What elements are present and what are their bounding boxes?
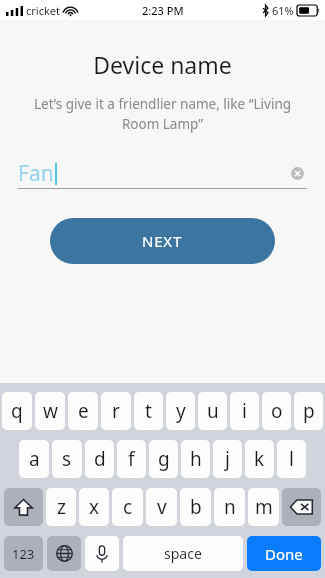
button[interactable]: u	[198, 392, 227, 430]
button[interactable]: x	[79, 488, 109, 526]
staticText: z	[57, 494, 66, 520]
button[interactable]: Backspace	[282, 488, 321, 526]
staticText: j	[225, 446, 230, 472]
button[interactable]: g	[149, 440, 178, 478]
button[interactable]: n	[214, 488, 245, 526]
button[interactable]: Dictate	[85, 536, 119, 571]
staticText: u	[207, 398, 219, 424]
staticText: a	[29, 446, 40, 472]
button[interactable]: q	[2, 392, 32, 430]
staticText: v	[157, 494, 167, 520]
staticText: c	[123, 494, 133, 520]
button[interactable]: d	[85, 440, 114, 478]
button[interactable]: Switch keyboard	[47, 536, 81, 571]
staticText: 123	[12, 545, 35, 563]
staticText: cricket	[26, 3, 60, 18]
button[interactable]: j	[213, 440, 242, 478]
button[interactable]: r	[101, 392, 131, 430]
button[interactable]: w	[35, 392, 65, 430]
staticText: Device name	[0, 49, 325, 80]
staticText: 61%	[272, 3, 294, 18]
button[interactable]: y	[166, 392, 195, 430]
button[interactable]: m	[248, 488, 279, 526]
button[interactable]: o	[262, 392, 291, 430]
staticText: space	[164, 544, 202, 563]
staticText: n	[224, 494, 236, 520]
button[interactable]: h	[181, 440, 210, 478]
staticText: l	[289, 446, 294, 472]
button[interactable]: l	[277, 440, 306, 478]
staticText: Done	[265, 544, 303, 564]
button[interactable]: s	[52, 440, 82, 478]
button[interactable]: v	[146, 488, 177, 526]
staticText: k	[254, 446, 265, 472]
staticText: b	[190, 494, 202, 520]
staticText: y	[176, 398, 186, 424]
staticText: p	[303, 398, 315, 424]
staticText: 2:23 PM	[142, 3, 184, 18]
staticText: i	[242, 398, 247, 424]
button[interactable]: p	[294, 392, 323, 430]
button[interactable]: f	[117, 440, 146, 478]
staticText: NEXT	[142, 231, 183, 251]
staticText: o	[271, 398, 283, 424]
staticText: h	[190, 446, 202, 472]
staticText: q	[11, 398, 23, 424]
button[interactable]: Fan	[18, 157, 307, 189]
button[interactable]: Shift	[4, 488, 43, 526]
staticText: r	[112, 398, 120, 424]
button[interactable]: a	[19, 440, 49, 478]
staticText: s	[62, 446, 72, 472]
staticText: x	[89, 494, 100, 520]
staticText: Fan	[18, 159, 54, 188]
button[interactable]: i	[230, 392, 259, 430]
staticText: g	[158, 446, 170, 472]
staticText: t	[145, 398, 152, 424]
button[interactable]: t	[134, 392, 163, 430]
button[interactable]: k	[245, 440, 274, 478]
staticText: w	[43, 398, 58, 424]
staticText: d	[94, 446, 106, 472]
staticText: f	[128, 446, 135, 472]
button[interactable]: Clear text	[287, 163, 307, 183]
staticText: e	[78, 398, 89, 424]
button[interactable]: space	[123, 536, 243, 571]
button[interactable]: Done	[247, 536, 321, 571]
button[interactable]: NEXT	[50, 218, 275, 264]
button[interactable]: z	[46, 488, 76, 526]
button[interactable]: 123	[4, 536, 43, 571]
button[interactable]: b	[180, 488, 211, 526]
staticText: Let’s give it a friendlier name, like “L…	[22, 95, 303, 133]
button[interactable]: c	[112, 488, 143, 526]
staticText: m	[255, 494, 273, 520]
button[interactable]: e	[68, 392, 98, 430]
